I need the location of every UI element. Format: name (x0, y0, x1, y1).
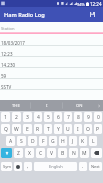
staticText: B (61, 150, 65, 157)
staticText: 5 (47, 114, 50, 121)
button[interactable]: 5 (44, 112, 52, 122)
staticText: C (39, 150, 43, 157)
button[interactable]: 12:23 (0, 46, 103, 57)
button[interactable]: Y (54, 124, 62, 134)
button[interactable]: Change keyboard (14, 162, 22, 171)
staticText: P (96, 126, 100, 133)
button[interactable]: SSTV (0, 79, 103, 90)
staticText: 12:24 (90, 1, 102, 7)
button[interactable]: 59 (0, 68, 103, 79)
button[interactable]: 1 (1, 112, 10, 122)
button[interactable]: 6 (54, 112, 62, 122)
staticText: SSTV (1, 84, 12, 90)
button[interactable]: H (59, 136, 67, 146)
staticText: H (61, 138, 65, 145)
button[interactable]: More suggestions (95, 100, 103, 111)
staticText: Station (1, 26, 15, 32)
staticText: 14.230 (1, 62, 16, 68)
button[interactable]: X (25, 148, 34, 158)
staticText: Ham Radio Log (4, 11, 45, 19)
button[interactable]: O (84, 124, 92, 134)
staticText: 6 (57, 114, 60, 121)
staticText: 2 (15, 114, 18, 121)
staticText: 8 (77, 114, 80, 121)
button[interactable]: I (74, 124, 82, 134)
staticText: , (27, 163, 29, 170)
staticText: 7 (67, 114, 70, 121)
button[interactable]: 7 (64, 112, 72, 122)
staticText: 3 (26, 114, 29, 121)
button[interactable]: . (79, 162, 87, 171)
button[interactable]: ON (63, 100, 95, 111)
staticText: W (14, 126, 19, 133)
staticText: N (72, 150, 76, 157)
button[interactable]: Z (14, 148, 23, 158)
staticText: O (86, 126, 90, 133)
button[interactable]: I (31, 100, 63, 111)
button[interactable]: 14.230 (0, 57, 103, 68)
staticText: Sym (3, 164, 11, 169)
button[interactable]: Sym (1, 162, 12, 171)
staticText: R (36, 126, 40, 133)
staticText: 94% (77, 2, 85, 7)
staticText: I (46, 103, 48, 109)
staticText: Z (17, 150, 20, 157)
staticText: 59 (1, 73, 7, 79)
button[interactable]: L (89, 136, 97, 146)
button[interactable]: U (64, 124, 72, 134)
button[interactable]: C (36, 148, 45, 158)
button[interactable]: F (39, 136, 47, 146)
button[interactable]: 2 (12, 112, 21, 122)
staticText: U (66, 126, 70, 133)
staticText: ON (76, 103, 83, 109)
button[interactable]: 8 (74, 112, 82, 122)
button[interactable]: Save (88, 10, 97, 19)
button[interactable]: G (49, 136, 57, 146)
staticText: E (26, 126, 29, 133)
button[interactable]: 0 (94, 112, 102, 122)
staticText: J (72, 138, 74, 145)
staticText: X (28, 150, 31, 157)
button[interactable]: J (69, 136, 77, 146)
button[interactable]: A (6, 136, 15, 146)
button[interactable]: 4 (34, 112, 42, 122)
button[interactable]: P (94, 124, 102, 134)
button[interactable]: T (44, 124, 52, 134)
button[interactable]: D (28, 136, 37, 146)
staticText: L (92, 138, 95, 145)
button[interactable]: 18/03/2017 (0, 34, 103, 46)
button[interactable]: Backspace (91, 148, 102, 158)
button[interactable]: Next (89, 162, 102, 171)
button[interactable]: Shift (1, 148, 12, 158)
staticText: G (51, 138, 55, 145)
button[interactable]: S (17, 136, 26, 146)
staticText: Next (91, 164, 100, 169)
staticText: I (77, 126, 79, 133)
button[interactable]: English (34, 162, 77, 171)
button[interactable]: V (47, 148, 56, 158)
staticText: D (31, 138, 35, 145)
button[interactable]: THE (0, 100, 31, 111)
staticText: A (9, 138, 13, 145)
button[interactable]: Station (0, 22, 103, 34)
button[interactable]: 9 (84, 112, 92, 122)
staticText: . (82, 163, 84, 170)
staticText: V (50, 150, 54, 157)
button[interactable]: E (23, 124, 32, 134)
button[interactable]: N (69, 148, 78, 158)
staticText: 9 (87, 114, 90, 121)
button[interactable]: , (24, 162, 32, 171)
staticText: 12:23 (1, 51, 13, 57)
button[interactable]: 3 (23, 112, 32, 122)
button[interactable]: Q (1, 124, 10, 134)
staticText: 1 (4, 114, 7, 121)
button[interactable]: K (79, 136, 87, 146)
button[interactable]: M (80, 148, 89, 158)
button[interactable]: B (58, 148, 67, 158)
staticText: Y (57, 126, 60, 133)
staticText: F (42, 138, 45, 145)
staticText: 18/03/2017 (1, 40, 25, 46)
button[interactable]: W (12, 124, 21, 134)
button[interactable]: R (34, 124, 42, 134)
staticText: K (81, 138, 85, 145)
